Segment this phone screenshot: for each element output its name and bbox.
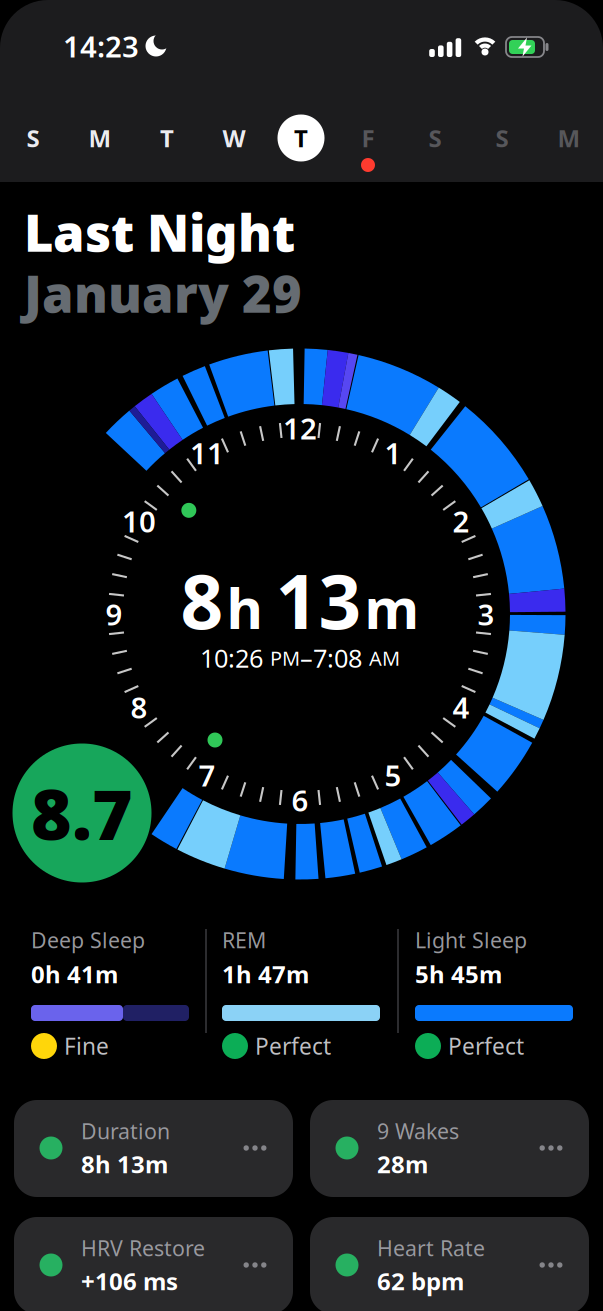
button[interactable]: T (277, 114, 325, 162)
staticText: HRV Restore (81, 1234, 205, 1262)
button[interactable]: HRV Restore (14, 1217, 293, 1311)
button[interactable]: S (478, 114, 526, 162)
staticText: AM (369, 645, 400, 671)
button[interactable]: Heart Rate (310, 1217, 589, 1311)
staticText: Last Night (24, 198, 295, 266)
staticText: 28m (377, 1148, 428, 1180)
staticText: 1 (384, 433, 401, 472)
staticText: +106 ms (81, 1265, 178, 1297)
button[interactable]: F (344, 114, 392, 162)
staticText: M (88, 122, 111, 154)
staticText: 8 (130, 687, 147, 726)
button[interactable]: T (143, 114, 191, 162)
staticText: Deep Sleep (31, 926, 145, 954)
staticText: 12 (283, 408, 317, 447)
staticText: Fine (64, 1031, 109, 1061)
button[interactable]: S (9, 114, 57, 162)
staticText: 2 (453, 501, 470, 540)
staticText: 8 (180, 550, 223, 650)
staticText: m (364, 570, 419, 644)
staticText: 11 (190, 433, 224, 472)
button[interactable]: 9 Wakes (310, 1100, 589, 1197)
staticText: T (294, 122, 308, 154)
staticText: 10 (122, 501, 156, 540)
staticText: W (222, 122, 245, 154)
button[interactable]: S (411, 114, 459, 162)
staticText: T (160, 122, 174, 154)
staticText: Light Sleep (415, 926, 527, 954)
button[interactable]: Duration (14, 1100, 293, 1197)
staticText: Perfect (448, 1031, 524, 1061)
button[interactable]: W (210, 114, 258, 162)
staticText: January 29 (24, 259, 302, 327)
staticText: S (495, 122, 508, 154)
staticText: 9 (105, 594, 122, 633)
staticText: 6 (291, 780, 308, 819)
staticText: 13 (275, 550, 361, 650)
staticText: 8h 13m (81, 1148, 168, 1180)
staticText: F (361, 122, 374, 154)
staticText: 1h 47m (222, 958, 309, 990)
staticText: REM (222, 926, 266, 954)
staticText: M (557, 122, 580, 154)
staticText: Perfect (255, 1031, 331, 1061)
staticText: PM (270, 645, 300, 671)
staticText: 62 bpm (377, 1265, 464, 1297)
staticText: 14:23 (63, 26, 139, 65)
staticText: 9 Wakes (377, 1117, 459, 1145)
staticText: Heart Rate (377, 1234, 485, 1262)
staticText: –7:08 (300, 641, 369, 675)
staticText: h (226, 570, 262, 644)
staticText: Duration (81, 1117, 170, 1145)
staticText: S (26, 122, 39, 154)
button[interactable]: M (545, 114, 593, 162)
staticText: 5 (384, 756, 401, 795)
staticText: 4 (453, 687, 470, 726)
staticText: 10:26 (200, 641, 270, 675)
staticText: 8.7 (31, 767, 133, 859)
staticText: 3 (477, 594, 494, 633)
staticText: S (428, 122, 441, 154)
staticText: 0h 41m (31, 958, 118, 990)
button[interactable]: M (76, 114, 124, 162)
staticText: 5h 45m (415, 958, 502, 990)
staticText: 7 (198, 756, 215, 795)
